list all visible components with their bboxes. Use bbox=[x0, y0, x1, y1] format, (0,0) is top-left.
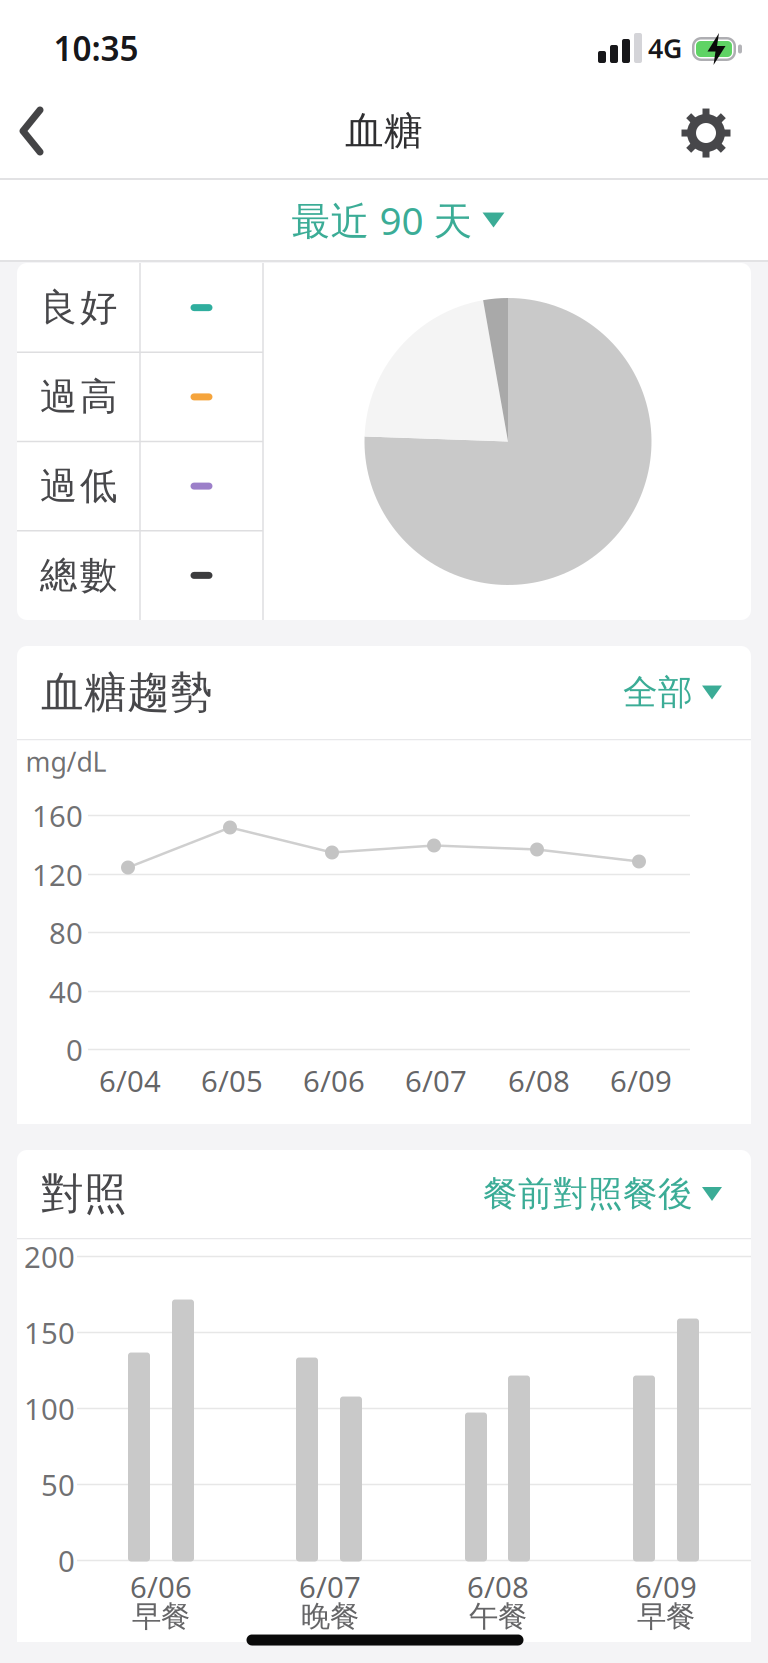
staticText: mg/dL bbox=[25, 744, 106, 779]
staticText: 50 bbox=[41, 1465, 75, 1504]
button[interactable]: Settings bbox=[679, 106, 733, 160]
staticText: 0 bbox=[58, 1541, 75, 1580]
staticText: 早餐 bbox=[132, 1598, 190, 1634]
staticText: 10:35 bbox=[53, 26, 138, 70]
button[interactable]: 最近 90 天 bbox=[291, 194, 504, 246]
staticText: 對照 bbox=[41, 1168, 127, 1220]
staticText: 80 bbox=[49, 913, 83, 952]
staticText: 良好 bbox=[40, 285, 117, 331]
staticText: 早餐 bbox=[637, 1598, 695, 1634]
staticText: 總數 bbox=[40, 552, 117, 598]
staticText: 餐前對照餐後 bbox=[483, 1173, 693, 1215]
staticText: 150 bbox=[24, 1313, 75, 1352]
staticText: 血糖趨勢 bbox=[41, 666, 213, 719]
staticText: 200 bbox=[24, 1237, 75, 1276]
staticText: 160 bbox=[32, 796, 83, 835]
staticText: 過高 bbox=[40, 374, 117, 420]
button[interactable]: 全部 bbox=[623, 671, 722, 714]
staticText: 100 bbox=[24, 1389, 75, 1428]
staticText: 0 bbox=[66, 1030, 83, 1069]
staticText: 6/08 bbox=[467, 1567, 529, 1606]
staticText: 6/09 bbox=[610, 1061, 672, 1100]
staticText: 晚餐 bbox=[301, 1598, 359, 1634]
staticText: 午餐 bbox=[469, 1598, 527, 1634]
button[interactable]: Back bbox=[19, 107, 45, 155]
staticText: 血糖 bbox=[345, 107, 423, 155]
staticText: 6/06 bbox=[303, 1061, 365, 1100]
button[interactable]: 餐前對照餐後 bbox=[483, 1173, 722, 1215]
staticText: 6/06 bbox=[130, 1567, 192, 1606]
staticText: 全部 bbox=[623, 671, 693, 714]
staticText: 6/05 bbox=[201, 1061, 263, 1100]
staticText: 120 bbox=[32, 855, 83, 894]
staticText: 6/08 bbox=[508, 1061, 570, 1100]
staticText: 6/09 bbox=[635, 1567, 697, 1606]
staticText: 最近 90 天 bbox=[291, 194, 472, 246]
staticText: 過低 bbox=[40, 463, 117, 509]
staticText: 6/07 bbox=[405, 1061, 467, 1100]
staticText: 6/04 bbox=[99, 1061, 161, 1100]
staticText: 4G bbox=[648, 30, 682, 66]
staticText: 6/07 bbox=[299, 1567, 361, 1606]
staticText: 40 bbox=[49, 972, 83, 1011]
